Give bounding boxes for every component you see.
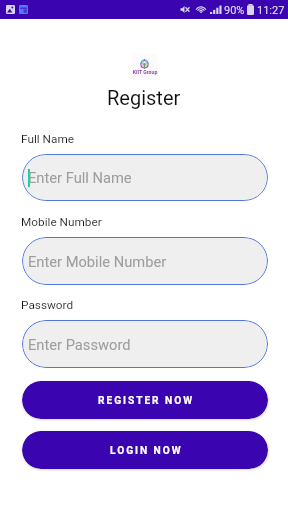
staticText: LOGIN NOW	[110, 445, 183, 457]
button[interactable]: LOGIN NOW	[22, 431, 268, 469]
staticText: Mobile Number	[21, 215, 102, 229]
other: Status bar	[0, 0, 288, 19]
button[interactable]: Enter Password	[22, 320, 268, 368]
button[interactable]: REGISTER NOW	[22, 381, 268, 419]
button[interactable]: Enter Mobile Number	[22, 237, 268, 285]
staticText: Full Name	[21, 132, 74, 146]
staticText: 11:27	[257, 4, 285, 17]
staticText: Register	[107, 86, 181, 109]
button[interactable]: Enter Full Name	[22, 154, 268, 201]
staticText: Enter Mobile Number	[28, 253, 167, 270]
staticText: KIIT Group	[132, 69, 158, 75]
staticText: REGISTER NOW	[98, 395, 195, 407]
staticText: Enter Full Name	[28, 169, 132, 186]
staticText: Enter Password	[28, 336, 131, 353]
staticText: Password	[21, 298, 74, 312]
staticText: 90%	[224, 4, 245, 17]
